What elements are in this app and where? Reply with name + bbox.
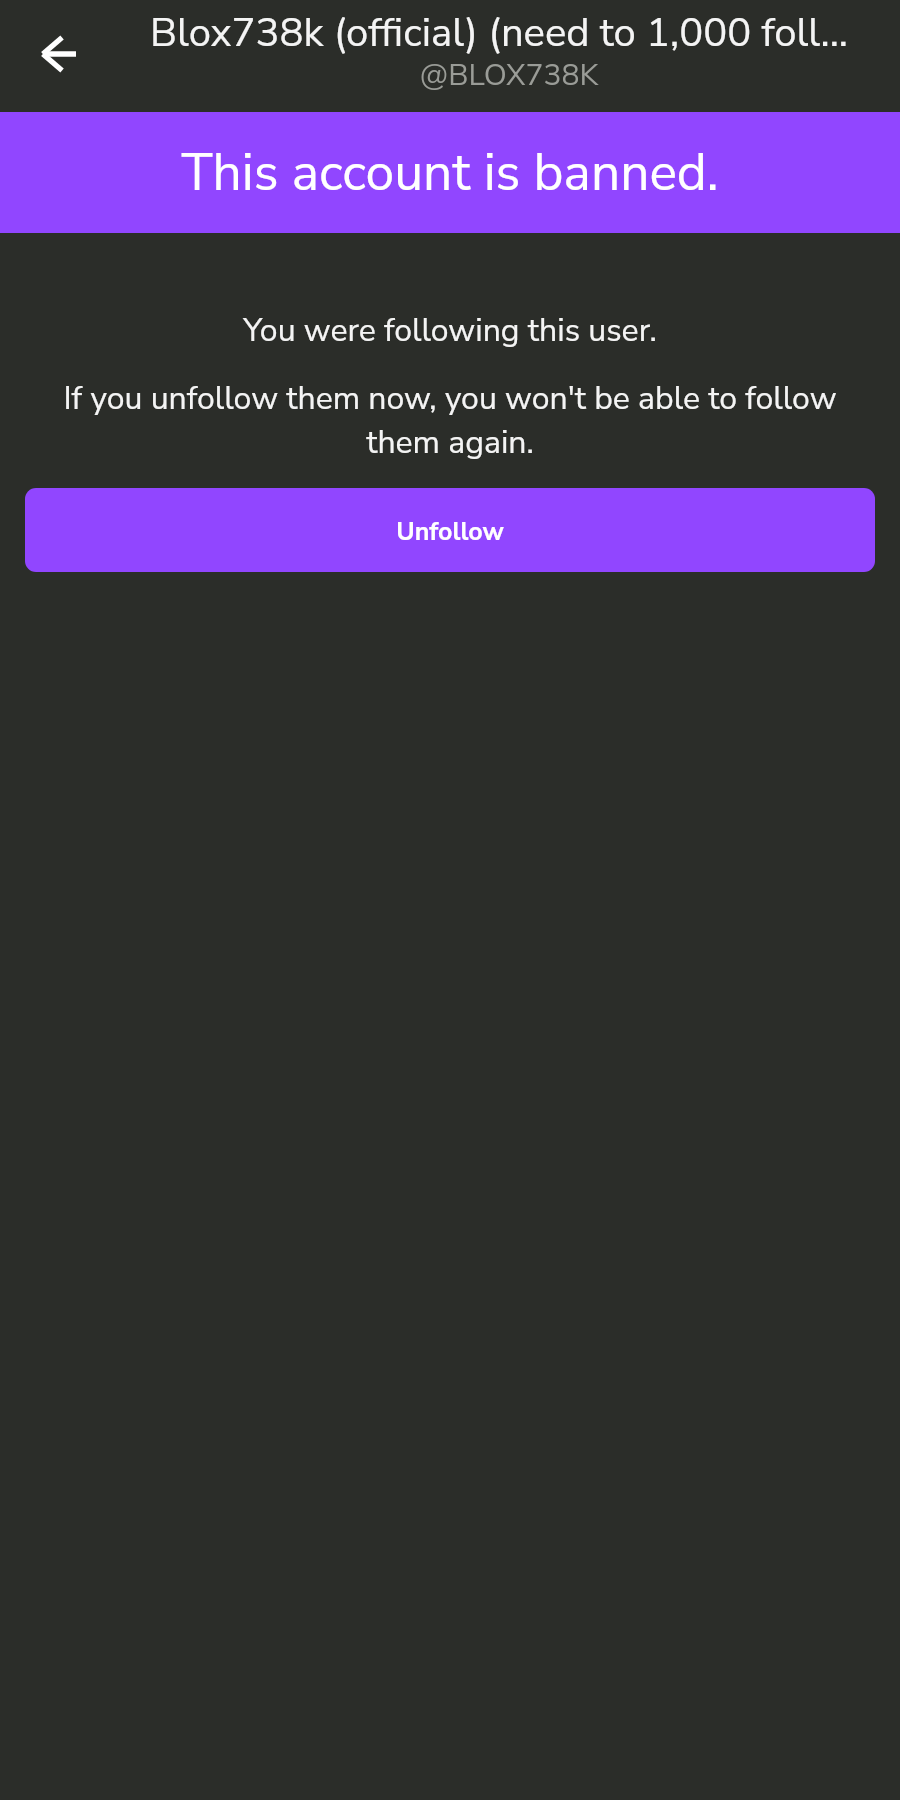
staticText: You were following this user. [0, 309, 900, 353]
staticText: This account is banned. [181, 138, 719, 208]
button[interactable]: Back [14, 10, 102, 98]
staticText: If you unfollow them now, you won't be a… [50, 377, 850, 465]
button[interactable]: Unfollow [25, 488, 875, 572]
staticText: @BLOX738K [138, 55, 880, 96]
staticText: Blox738k (official) (need to 1,000 foll.… [118, 6, 880, 61]
staticText: Unfollow [396, 515, 504, 549]
